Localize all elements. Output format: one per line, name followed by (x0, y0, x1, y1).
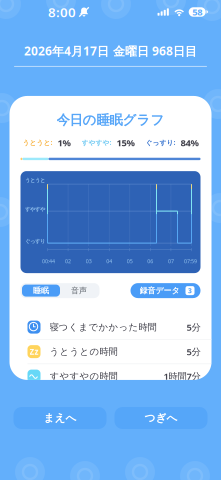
staticText: ぐっすり (25, 238, 45, 244)
staticText: 04 (106, 258, 112, 265)
staticText: 07:59 (184, 258, 197, 265)
staticText: 音声 (71, 286, 87, 295)
staticText: 1% (57, 136, 70, 149)
staticText: 睡眠 (33, 286, 49, 295)
staticText: ぐっすり: (145, 138, 175, 147)
staticText: 2026年4月17日 金曜日 968日目 (24, 43, 197, 59)
staticText: 00:44 (42, 258, 55, 265)
staticText: 05 (127, 258, 133, 265)
staticText: 02 (65, 258, 71, 265)
button[interactable]: Zz (9, 340, 211, 364)
staticText: うとうと: (22, 138, 52, 147)
staticText: 1時間7分 (163, 370, 200, 382)
button[interactable]: 音声 (60, 285, 98, 297)
staticText: Zz (29, 346, 38, 357)
button[interactable]: 録音データ (130, 283, 200, 298)
staticText: まえへ (43, 411, 76, 424)
staticText: 58 (192, 6, 202, 18)
staticText: すやすやの時間 (49, 370, 117, 382)
staticText: 5分 (186, 321, 200, 333)
staticText: 寝つくまでかかった時間 (49, 321, 156, 333)
staticText: 3 (188, 286, 192, 295)
button[interactable]: ぐっすりの時間 (9, 389, 211, 413)
staticText: 8:00 (48, 3, 76, 21)
staticText: 03 (86, 258, 92, 265)
staticText: すやすや: (81, 138, 111, 147)
button[interactable]: つぎへ (114, 407, 207, 429)
staticText: うとうとの時間 (49, 346, 117, 357)
staticText: うとうと (25, 177, 45, 183)
staticText: 今日の睡眠グラフ (56, 112, 164, 128)
button[interactable]: 睡眠 (22, 285, 60, 297)
staticText: 07 (168, 258, 174, 265)
staticText: 5分 (186, 345, 200, 358)
button[interactable]: まえへ (13, 407, 106, 429)
staticText: つぎへ (144, 411, 177, 424)
staticText: 録音データ (139, 286, 179, 295)
staticText: 15% (116, 136, 134, 149)
staticText: 84% (180, 136, 198, 149)
button[interactable]: 寝つくまでかかった時間 (9, 315, 211, 339)
staticText: すやすや (25, 206, 45, 212)
staticText: 06 (147, 258, 153, 265)
button[interactable]: すやすやの時間 (9, 364, 211, 388)
